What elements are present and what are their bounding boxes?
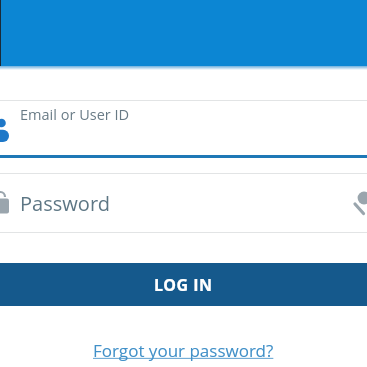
button[interactable]: LOG IN: [0, 263, 367, 306]
staticText: Email or User ID: [20, 105, 130, 125]
button[interactable]: Email or User ID: [0, 100, 367, 158]
staticText: LOG IN: [154, 274, 213, 296]
staticText: Password: [20, 190, 110, 217]
button[interactable]: Forgot your password?: [93, 339, 274, 362]
button[interactable]: [348, 184, 367, 220]
button[interactable]: Password: [0, 173, 367, 233]
